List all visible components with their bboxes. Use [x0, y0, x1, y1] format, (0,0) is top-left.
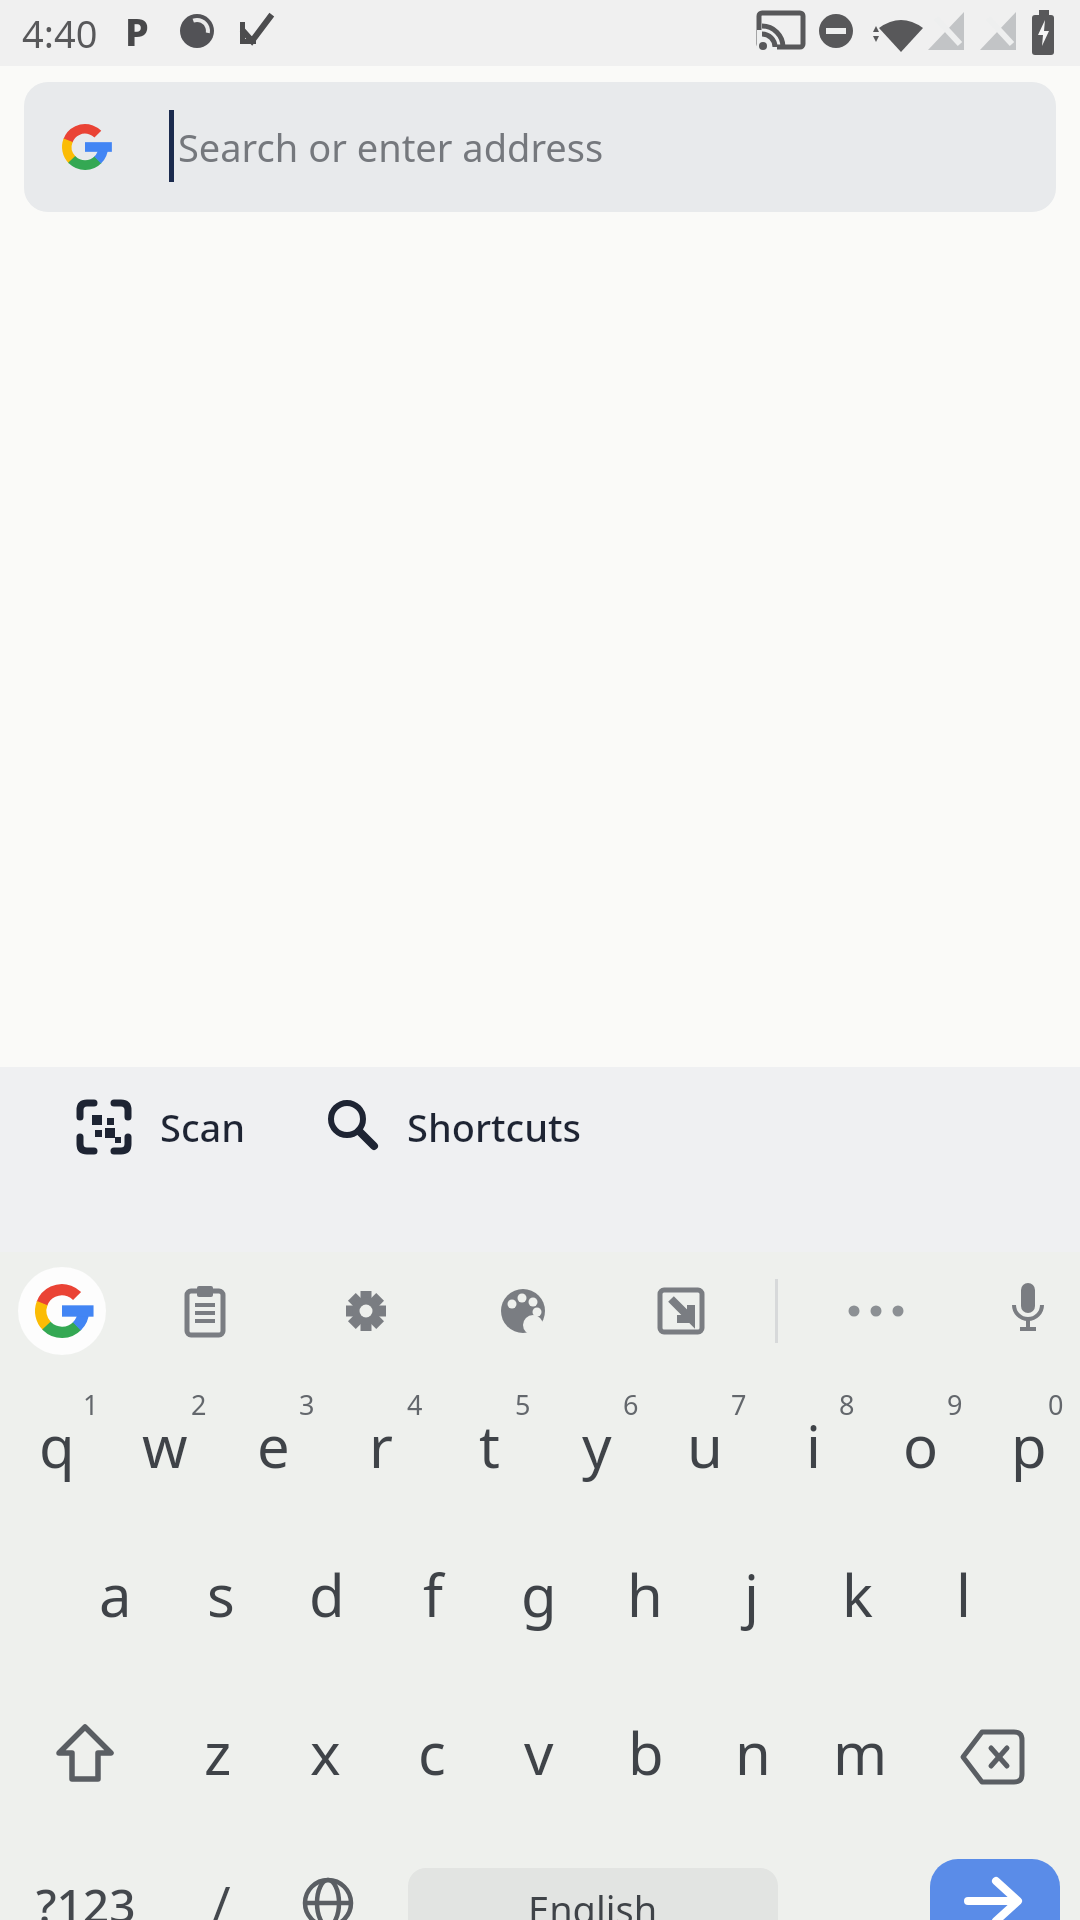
- staticText: g: [521, 1555, 557, 1634]
- staticText: w: [142, 1406, 188, 1485]
- button[interactable]: [167, 1540, 274, 1690]
- staticText: m: [833, 1713, 888, 1792]
- staticText: 2: [191, 1386, 207, 1423]
- staticText: t: [479, 1406, 500, 1485]
- button[interactable]: [273, 1540, 380, 1690]
- button[interactable]: [592, 1690, 699, 1840]
- staticText: p: [1011, 1406, 1047, 1485]
- staticText: l: [956, 1555, 971, 1634]
- staticText: 7: [731, 1386, 747, 1423]
- button[interactable]: [485, 1690, 592, 1840]
- staticText: e: [257, 1406, 290, 1485]
- staticText: ?123: [36, 1874, 136, 1920]
- button[interactable]: [378, 1690, 485, 1840]
- staticText: 8: [839, 1386, 855, 1423]
- button[interactable]: [108, 1385, 216, 1537]
- button[interactable]: [302, 1877, 354, 1920]
- button[interactable]: [930, 1859, 1060, 1920]
- staticText: 4:40: [22, 7, 98, 59]
- button[interactable]: [485, 1540, 592, 1690]
- button[interactable]: [846, 1303, 906, 1319]
- staticText: x: [310, 1713, 341, 1792]
- button[interactable]: [184, 1285, 226, 1337]
- staticText: k: [842, 1555, 873, 1634]
- button[interactable]: [18, 1267, 106, 1355]
- staticText: 0: [1048, 1386, 1064, 1423]
- staticText: r: [369, 1406, 393, 1485]
- button[interactable]: [657, 1287, 705, 1335]
- staticText: Shortcuts: [407, 1101, 582, 1153]
- button[interactable]: [216, 1385, 324, 1537]
- staticText: q: [39, 1406, 75, 1485]
- staticText: English: [528, 1883, 658, 1920]
- button[interactable]: [756, 1385, 864, 1537]
- button[interactable]: [697, 1540, 804, 1690]
- staticText: b: [628, 1713, 664, 1792]
- button[interactable]: [164, 1690, 271, 1840]
- staticText: z: [204, 1713, 232, 1792]
- staticText: 3: [299, 1386, 315, 1423]
- button[interactable]: [1009, 1283, 1047, 1341]
- staticText: o: [903, 1406, 939, 1485]
- button[interactable]: [591, 1540, 698, 1690]
- button[interactable]: [432, 1385, 540, 1537]
- button[interactable]: [0, 1385, 108, 1537]
- button[interactable]: English: [408, 1868, 778, 1920]
- staticText: P: [125, 5, 149, 57]
- staticText: s: [207, 1555, 235, 1634]
- button[interactable]: [699, 1690, 806, 1840]
- button[interactable]: [806, 1690, 913, 1840]
- button[interactable]: [803, 1540, 910, 1690]
- button[interactable]: [271, 1690, 378, 1840]
- button[interactable]: [864, 1385, 972, 1537]
- staticText: c: [418, 1713, 446, 1792]
- button[interactable]: [960, 1729, 1026, 1785]
- button[interactable]: [379, 1540, 486, 1690]
- button[interactable]: [909, 1540, 1016, 1690]
- button[interactable]: [499, 1287, 547, 1335]
- button[interactable]: [540, 1385, 648, 1537]
- staticText: h: [627, 1555, 663, 1634]
- button[interactable]: [648, 1385, 756, 1537]
- staticText: a: [99, 1555, 132, 1634]
- staticText: 9: [947, 1386, 963, 1423]
- staticText: 6: [623, 1386, 639, 1423]
- staticText: u: [687, 1406, 723, 1485]
- staticText: y: [582, 1406, 612, 1485]
- staticText: v: [524, 1713, 554, 1792]
- staticText: n: [735, 1713, 771, 1792]
- button[interactable]: [342, 1287, 390, 1335]
- staticText: Search or enter address: [178, 121, 604, 173]
- button[interactable]: [972, 1385, 1080, 1537]
- button[interactable]: [305, 1078, 605, 1178]
- staticText: d: [309, 1555, 345, 1634]
- staticText: 4: [407, 1386, 423, 1423]
- button[interactable]: [61, 1540, 168, 1690]
- button[interactable]: [53, 1724, 117, 1784]
- staticText: f: [423, 1555, 443, 1634]
- button[interactable]: [0, 1845, 162, 1920]
- staticText: i: [806, 1406, 821, 1485]
- staticText: 1: [83, 1386, 99, 1423]
- button[interactable]: [24, 82, 1056, 212]
- staticText: 5: [515, 1386, 531, 1423]
- button[interactable]: [162, 1845, 282, 1920]
- button[interactable]: [324, 1385, 432, 1537]
- button[interactable]: [50, 1078, 270, 1178]
- staticText: /: [212, 1869, 231, 1920]
- staticText: Scan: [160, 1101, 246, 1153]
- staticText: j: [744, 1555, 759, 1634]
